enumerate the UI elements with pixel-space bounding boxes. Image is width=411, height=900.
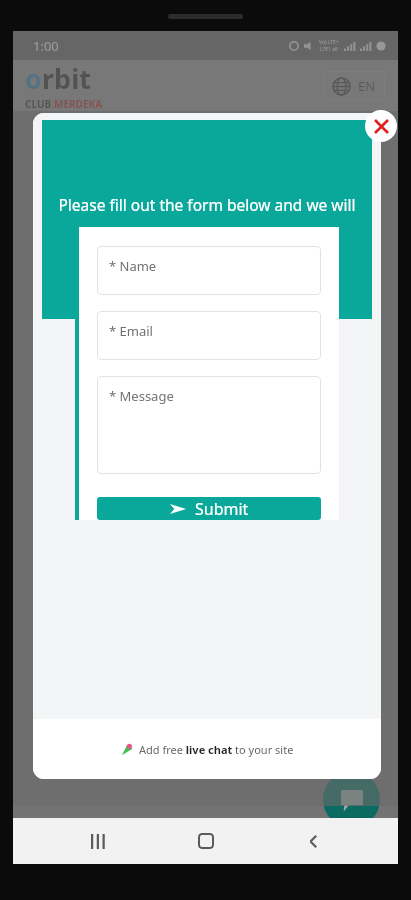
staticText: * Name <box>109 257 157 275</box>
staticText: Submit <box>195 498 249 520</box>
staticText: Please fill out the form below and we wi… <box>58 194 356 245</box>
staticText: * Email <box>109 322 153 340</box>
staticText: CLUB <box>25 97 54 111</box>
staticText: rbit <box>42 60 91 97</box>
button[interactable]: Open live chat <box>323 771 380 828</box>
button[interactable]: Close <box>365 110 397 142</box>
staticText: 1:00 <box>33 37 59 55</box>
staticText: Vo) LTE+ <box>319 39 339 46</box>
button[interactable]: Submit <box>97 497 321 520</box>
button[interactable]: Back <box>290 818 336 864</box>
staticText: LTE1 all <box>320 46 338 53</box>
staticText: o <box>25 60 42 97</box>
staticText: MERDEKA <box>54 97 103 111</box>
staticText: * Message <box>109 387 174 405</box>
button[interactable]: * Message <box>97 376 321 474</box>
staticText: EN <box>358 77 376 95</box>
button[interactable]: Recent apps <box>75 818 121 864</box>
button[interactable]: * Email <box>97 311 321 360</box>
button[interactable]: EN <box>324 71 385 101</box>
button[interactable]: o <box>25 60 103 111</box>
staticText: Add free live chat to your site <box>139 742 294 757</box>
button[interactable]: * Name <box>97 246 321 295</box>
button[interactable]: Home <box>183 818 229 864</box>
button[interactable]: Add free live chat to your site <box>33 719 381 779</box>
